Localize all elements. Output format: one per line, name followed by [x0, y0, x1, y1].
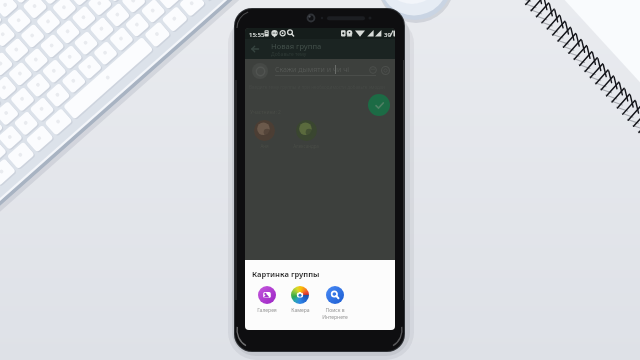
staticText: Камера: [291, 307, 310, 314]
button[interactable]: [254, 120, 275, 141]
button[interactable]: Камера: [283, 286, 317, 314]
button[interactable]: Назад: [245, 39, 265, 59]
staticText: Добавьте тему: [271, 51, 307, 58]
button[interactable]: Поиск в Интернете: [318, 286, 352, 321]
button[interactable]: Галерея: [250, 286, 284, 314]
staticText: Галерея: [257, 307, 277, 314]
staticText: Новая группа: [271, 41, 322, 51]
button[interactable]: Картинка группы: [252, 63, 268, 79]
button[interactable]: [296, 120, 317, 141]
button[interactable]: Готово: [368, 94, 390, 116]
staticText: 15:55: [249, 31, 265, 39]
staticText: 39: [384, 31, 391, 39]
staticText: Поиск в Интернете: [322, 307, 348, 321]
staticText: Скажи дымяти и чи чі: [275, 65, 350, 75]
staticText: Картинка группы: [252, 269, 320, 279]
